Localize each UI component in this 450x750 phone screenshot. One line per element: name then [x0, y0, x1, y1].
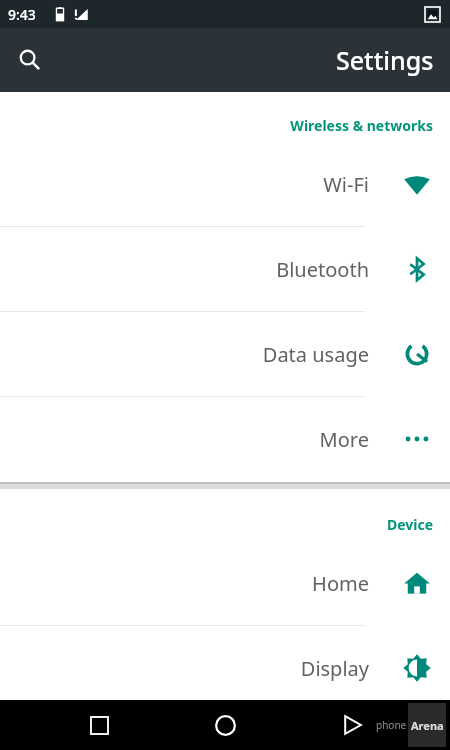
staticText: 9:43 — [8, 5, 36, 24]
staticText: Bluetooth — [276, 256, 369, 283]
staticText: Arena — [411, 718, 444, 733]
staticText: Home — [312, 570, 369, 597]
button[interactable]: Back — [324, 700, 380, 750]
button[interactable]: Wi-Fi — [0, 142, 450, 227]
button[interactable]: Recents — [71, 700, 127, 750]
staticText: Device — [386, 515, 433, 534]
button[interactable]: More — [0, 397, 450, 481]
button[interactable]: Home — [0, 541, 450, 626]
staticText: phone — [376, 718, 407, 732]
staticText: Wireless & networks — [290, 116, 433, 135]
staticText: Wi-Fi — [323, 171, 369, 198]
staticText: Display — [300, 655, 369, 682]
button[interactable]: Data usage — [0, 312, 450, 397]
button[interactable]: Search — [6, 36, 54, 84]
staticText: Data usage — [262, 341, 369, 368]
staticText: Settings — [336, 43, 434, 77]
button[interactable]: Home — [197, 700, 253, 750]
staticText: More — [319, 426, 369, 453]
button[interactable]: Display — [0, 626, 450, 710]
button[interactable]: Bluetooth — [0, 227, 450, 312]
